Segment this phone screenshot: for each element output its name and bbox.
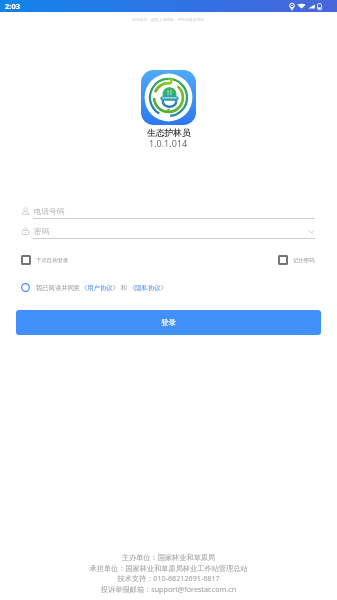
staticText: 我已阅读并同意: [36, 284, 81, 292]
staticText: 《隐私协议》: [129, 284, 167, 292]
staticText: 《用户协议》: [81, 284, 119, 292]
staticText: 2:03: [5, 1, 20, 11]
staticText: 如无登录，数据上报受阻，手机电量多消耗: [132, 17, 205, 22]
button[interactable]: 下次自动登录: [21, 255, 69, 265]
other: 展开: [308, 228, 315, 235]
staticText: 生态护林员: [147, 128, 191, 139]
button[interactable]: 记住密码: [278, 255, 315, 265]
staticText: 主办单位：国家林业和草原局 承担单位：国家林业和草原局林业工作站管理总站 技术支…: [89, 553, 248, 594]
staticText: 密码: [34, 227, 49, 236]
button[interactable]: 登录: [16, 310, 321, 335]
button[interactable]: 密码: [0, 225, 337, 239]
staticText: 1.0.1.014: [149, 137, 188, 149]
staticText: 和: [119, 283, 129, 292]
button[interactable]: 我已阅读并同意: [21, 283, 315, 292]
staticText: 登录: [161, 318, 176, 327]
staticText: 电话号码: [34, 207, 64, 216]
button[interactable]: 电话号码: [0, 205, 337, 219]
staticText: 下次自动登录: [36, 257, 69, 264]
staticText: 记住密码: [293, 257, 315, 264]
